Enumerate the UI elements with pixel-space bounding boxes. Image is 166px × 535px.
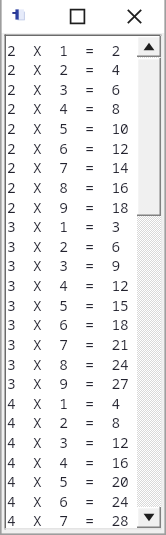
staticText: 2 X 7 = 14 [7,157,129,177]
staticText: 2 X 1 = 2 [7,40,121,60]
staticText: 3 X 9 = 27 [7,373,129,393]
button[interactable]: Scroll down [137,507,161,528]
staticText: 4 X 4 = 16 [7,452,129,472]
staticText: 4 X 5 = 20 [7,471,129,491]
staticText: 3 X 1 = 3 [7,216,121,236]
button[interactable]: Close [121,4,148,29]
staticText: 3 X 6 = 18 [7,314,129,334]
staticText: 2 X 9 = 18 [7,197,129,217]
staticText: 3 X 8 = 24 [7,354,129,374]
staticText: 4 X 3 = 12 [7,432,129,452]
staticText: 3 X 2 = 6 [7,236,121,256]
staticText: 3 X 5 = 15 [7,295,129,315]
staticText: 4 X 1 = 4 [7,393,121,413]
staticText: 4 X 7 = 28 [7,510,129,528]
staticText: 4 X 2 = 8 [7,412,121,432]
staticText: 2 X 2 = 4 [7,59,121,79]
staticText: 2 X 4 = 8 [7,98,121,118]
staticText: 3 X 4 = 12 [7,275,129,295]
staticText: 4 X 6 = 24 [7,491,129,511]
button[interactable]: Scroll position [137,58,161,216]
staticText: 2 X 3 = 6 [7,79,121,99]
button[interactable]: Maximize [64,4,91,29]
staticText: 2 X 8 = 16 [7,177,129,197]
button[interactable]: Scroll up [137,36,161,57]
staticText: 2 X 6 = 12 [7,138,129,158]
button[interactable]: Application icon [11,7,28,24]
staticText: 3 X 7 = 21 [7,334,129,354]
staticText: 2 X 5 = 10 [7,118,129,138]
staticText: 3 X 3 = 9 [7,255,121,275]
